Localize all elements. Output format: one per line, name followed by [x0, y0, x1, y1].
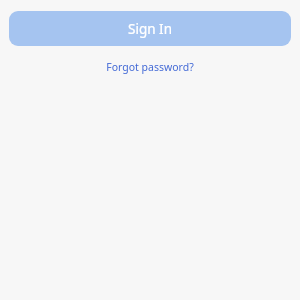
button[interactable]: Sign In — [9, 11, 291, 46]
staticText: Forgot password? — [106, 60, 194, 74]
staticText: Sign In — [128, 20, 172, 38]
button[interactable]: Forgot password? — [100, 57, 200, 77]
